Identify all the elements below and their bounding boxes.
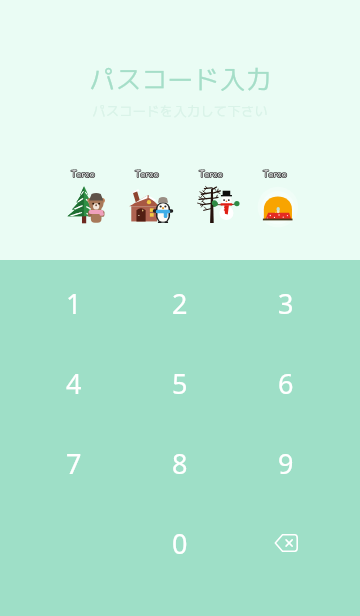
staticText: 0 (172, 525, 188, 562)
button[interactable]: 7 (21, 423, 127, 503)
button[interactable]: 3 (233, 263, 339, 343)
button[interactable]: Backspace (233, 503, 339, 583)
button[interactable]: 1 (21, 263, 127, 343)
button[interactable]: 9 (233, 423, 339, 503)
button[interactable]: Theme preview 2 (116, 164, 180, 234)
staticText: 9 (278, 445, 294, 482)
button[interactable]: 4 (21, 343, 127, 423)
button[interactable]: Theme preview 3 (180, 164, 244, 234)
button[interactable]: 5 (127, 343, 233, 423)
button[interactable]: 2 (127, 263, 233, 343)
staticText: パスコード入力 (89, 61, 272, 97)
button[interactable]: Theme preview 1 (52, 164, 116, 234)
staticText: 4 (66, 365, 82, 402)
staticText: 2 (172, 285, 188, 322)
staticText: 8 (172, 445, 188, 482)
staticText: 6 (278, 365, 294, 402)
other: Backspace (269, 526, 303, 560)
staticText: 7 (66, 445, 82, 482)
button[interactable]: 6 (233, 343, 339, 423)
button[interactable]: 0 (127, 503, 233, 583)
staticText: パスコードを入力して下さい (92, 101, 268, 120)
staticText: 5 (172, 365, 188, 402)
staticText: 1 (66, 285, 82, 322)
staticText: 3 (278, 285, 294, 322)
button[interactable]: Theme preview 4 (244, 164, 308, 234)
button[interactable]: 8 (127, 423, 233, 503)
